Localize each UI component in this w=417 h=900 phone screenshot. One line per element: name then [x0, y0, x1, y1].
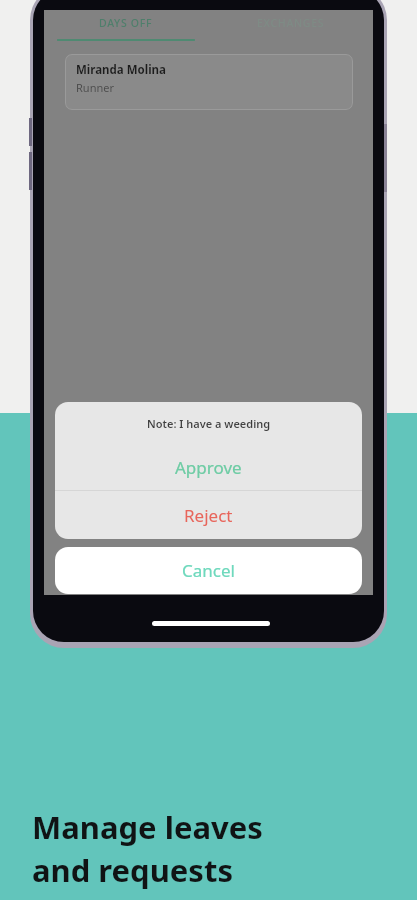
- staticText: Miranda Molina: [76, 62, 166, 78]
- button[interactable]: Reject: [55, 491, 362, 539]
- staticText: Runner: [76, 80, 114, 95]
- button[interactable]: Miranda Molina: [65, 54, 353, 110]
- staticText: Cancel: [182, 559, 235, 582]
- staticText: Note: I have a weeding: [147, 416, 271, 431]
- staticText: DAYS OFF: [99, 16, 153, 30]
- staticText: Approve: [175, 456, 242, 479]
- staticText: Reject: [184, 504, 233, 527]
- staticText: and requests: [32, 849, 233, 891]
- staticText: Manage leaves: [32, 806, 263, 848]
- button[interactable]: DAYS OFF: [44, 10, 208, 44]
- button[interactable]: Cancel: [55, 547, 362, 594]
- button[interactable]: Approve: [55, 444, 362, 490]
